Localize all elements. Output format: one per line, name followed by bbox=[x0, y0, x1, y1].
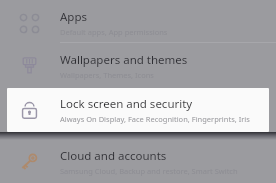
other: Wallpapers and themes bbox=[17, 55, 41, 76]
button[interactable]: Cloud and accounts bbox=[0, 140, 276, 183]
button[interactable]: Wallpapers and themes bbox=[0, 43, 276, 88]
staticText: Default apps, App permissions bbox=[60, 27, 168, 37]
button[interactable]: Apps bbox=[0, 3, 276, 43]
staticText: Lock screen and security bbox=[60, 96, 193, 112]
staticText: Samsung Cloud, Backup and restore, Smart… bbox=[60, 166, 238, 176]
other: Cloud and accounts bbox=[17, 151, 41, 172]
staticText: Apps bbox=[60, 9, 88, 25]
staticText: Wallpapers, Themes, Icons bbox=[60, 70, 154, 80]
staticText: Cloud and accounts bbox=[60, 148, 167, 164]
staticText: Wallpapers and themes bbox=[60, 52, 188, 68]
other: Apps bbox=[17, 13, 41, 34]
button[interactable]: Lock screen and security bbox=[7, 88, 269, 132]
other: Lock screen and security bbox=[17, 100, 41, 121]
staticText: Always On Display, Face Recognition, Fin… bbox=[60, 114, 250, 124]
